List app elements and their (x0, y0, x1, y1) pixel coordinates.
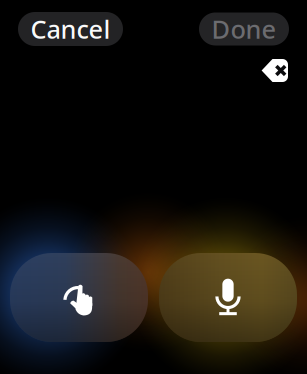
button[interactable]: Delete (256, 54, 293, 87)
button[interactable]: Scribble (10, 253, 148, 342)
button[interactable]: Dictation (159, 253, 297, 342)
staticText: Cancel (30, 12, 110, 46)
button[interactable]: Done (199, 12, 289, 45)
staticText: Done (211, 12, 276, 46)
button[interactable]: Cancel (18, 12, 123, 46)
